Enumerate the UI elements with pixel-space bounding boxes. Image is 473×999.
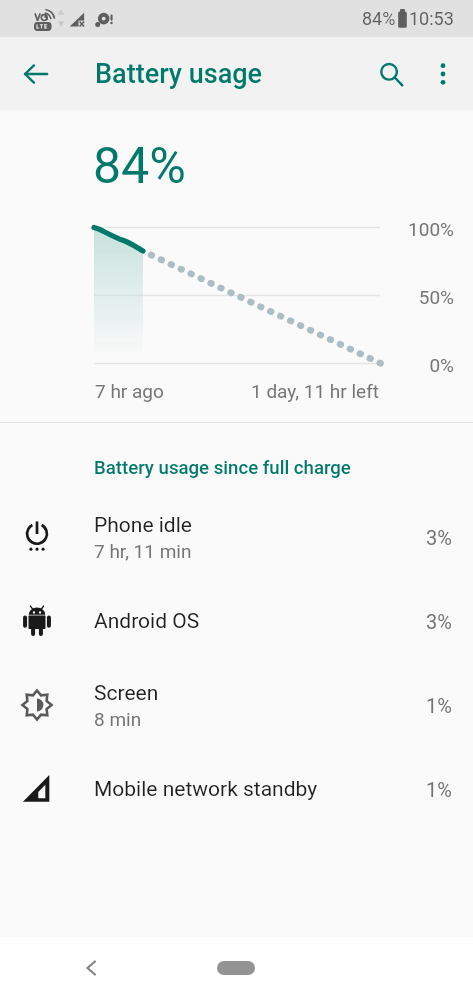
staticText: Battery usage since full charge bbox=[94, 457, 351, 479]
staticText: 0% bbox=[0, 354, 454, 376]
staticText: Mobile network standby bbox=[94, 777, 318, 802]
staticText: 3% bbox=[426, 610, 452, 633]
staticText: 1% bbox=[426, 778, 452, 801]
staticText: Battery usage bbox=[95, 58, 263, 90]
staticText: 10:53 bbox=[409, 8, 454, 29]
button[interactable]: Screen bbox=[0, 657, 473, 753]
button[interactable]: Mobile network standby bbox=[0, 753, 473, 825]
staticText: Phone idle bbox=[94, 513, 192, 538]
staticText: 8 min bbox=[94, 708, 142, 730]
staticText: Screen bbox=[94, 681, 159, 706]
button[interactable]: Phone idle bbox=[0, 489, 473, 585]
staticText: 3% bbox=[426, 526, 452, 549]
staticText: Android OS bbox=[94, 609, 200, 634]
staticText: 84% bbox=[93, 137, 186, 196]
staticText: 1% bbox=[426, 694, 452, 717]
button[interactable]: Home bbox=[206, 951, 266, 985]
staticText: 1 day, 11 hr left bbox=[251, 380, 379, 402]
staticText: 50% bbox=[0, 286, 454, 308]
staticText: 7 hr, 11 min bbox=[94, 540, 192, 562]
staticText: 84% bbox=[362, 8, 396, 29]
button[interactable]: More options bbox=[417, 48, 469, 100]
staticText: 7 hr ago bbox=[95, 380, 164, 402]
button[interactable]: Search bbox=[365, 48, 417, 100]
button[interactable]: Android OS bbox=[0, 585, 473, 657]
staticText: 100% bbox=[0, 218, 454, 240]
button[interactable]: Back bbox=[71, 948, 111, 988]
button[interactable]: Back bbox=[12, 50, 60, 98]
